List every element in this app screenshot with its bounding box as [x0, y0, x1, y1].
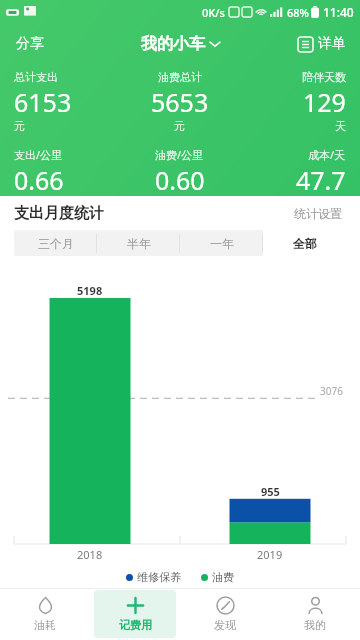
staticText: 5198: [77, 283, 103, 298]
button[interactable]: 三个月: [14, 230, 97, 256]
staticText: 三个月: [38, 236, 74, 251]
other: 油耗: [36, 596, 55, 615]
staticText: 元: [14, 119, 25, 133]
staticText: 我的: [304, 618, 326, 632]
staticText: 5653: [151, 85, 209, 119]
staticText: 3076: [320, 384, 343, 398]
staticText: 成本/天: [308, 147, 346, 162]
button[interactable]: 全部: [263, 230, 346, 256]
staticText: 68%: [287, 5, 309, 20]
button[interactable]: 发现: [184, 590, 266, 638]
staticText: 0.60: [155, 163, 205, 196]
staticText: 6153: [14, 85, 72, 119]
staticText: 0K/s: [202, 5, 225, 20]
staticText: 2018: [77, 547, 103, 562]
staticText: 油耗: [34, 618, 56, 632]
other: 我的: [306, 596, 325, 615]
staticText: 我的小车: [141, 34, 205, 54]
staticText: 天: [335, 119, 346, 133]
staticText: 维修保养: [137, 570, 181, 584]
staticText: 支出/公里: [14, 147, 63, 162]
staticText: 分享: [16, 35, 44, 53]
staticText: 955: [261, 484, 280, 499]
staticText: 0.66: [14, 163, 64, 196]
other: 发现: [216, 596, 235, 615]
button[interactable]: 油耗: [4, 590, 86, 638]
staticText: 全部: [293, 236, 317, 251]
staticText: 2019: [257, 547, 283, 562]
button[interactable]: 统计设置: [290, 202, 346, 225]
button[interactable]: 详单: [292, 29, 352, 59]
staticText: 支出月度统计: [14, 204, 104, 223]
button[interactable]: 分享: [8, 29, 52, 59]
staticText: 油费/公里: [155, 147, 204, 162]
button[interactable]: 记费用: [94, 590, 176, 638]
staticText: 记费用: [119, 618, 152, 632]
staticText: 陪伴天数: [302, 70, 346, 84]
staticText: 油费: [212, 570, 234, 584]
staticText: 129: [303, 85, 346, 119]
other: 记费用: [126, 596, 145, 615]
button[interactable]: 半年: [97, 230, 180, 256]
staticText: 详单: [318, 35, 346, 53]
staticText: 元: [174, 119, 185, 133]
staticText: 总计支出: [14, 70, 58, 84]
button[interactable]: 我的: [274, 590, 356, 638]
button[interactable]: 一年: [180, 230, 263, 256]
staticText: 发现: [214, 618, 236, 632]
staticText: 47.7: [296, 163, 346, 196]
staticText: 统计设置: [294, 206, 342, 221]
staticText: 油费总计: [158, 70, 202, 84]
staticText: 半年: [127, 236, 151, 251]
staticText: 一年: [210, 236, 234, 251]
staticText: 11:40: [323, 4, 354, 20]
button[interactable]: 我的小车: [133, 28, 228, 60]
